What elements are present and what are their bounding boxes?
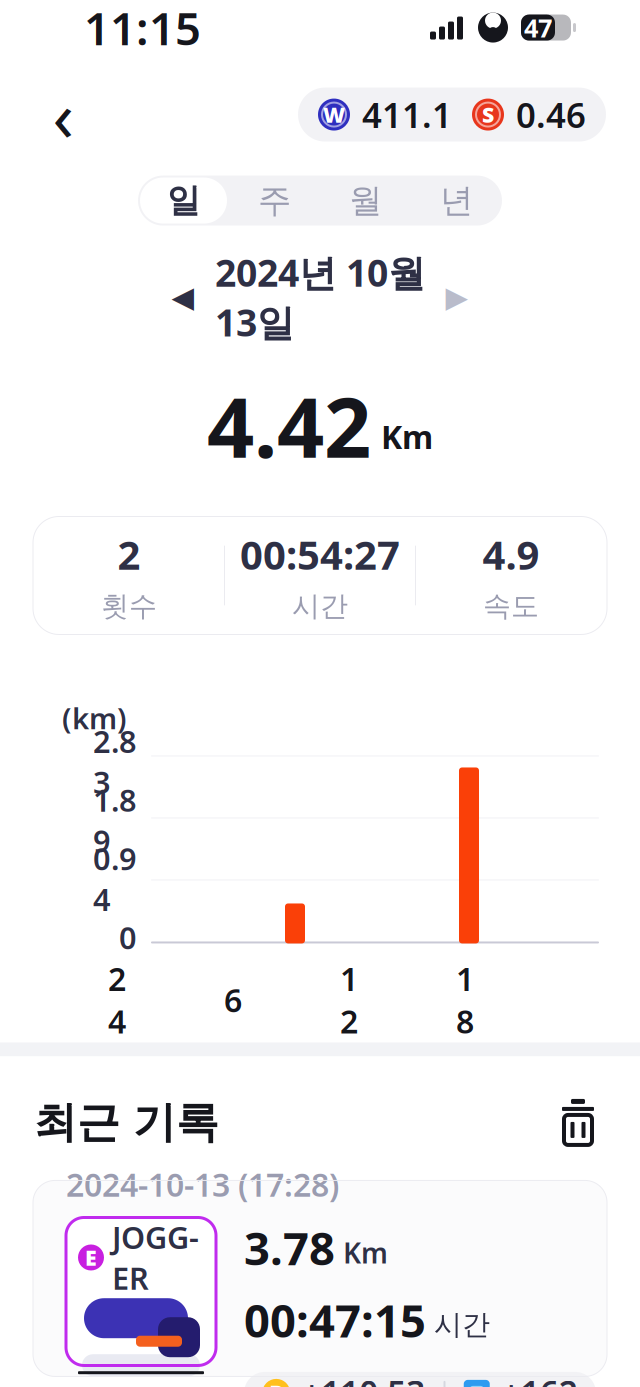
staticText: S [482, 100, 494, 129]
staticText: 11:15 [84, 0, 201, 58]
staticText: Km [343, 1234, 388, 1271]
staticText: E [85, 1243, 97, 1272]
staticText: 최근 기록 [34, 1096, 219, 1149]
staticText: 주 [258, 180, 291, 221]
button[interactable]: Back [32, 84, 94, 146]
staticText: 2024-10-13 (17:28) [66, 1163, 339, 1205]
staticText: 시간 [292, 589, 348, 623]
staticText: 년 [440, 180, 473, 221]
button[interactable]: Previous day [161, 275, 205, 319]
button[interactable]: 2024-10-13 (17:28) [33, 1180, 607, 1376]
staticText: 18 [456, 957, 474, 1042]
staticText: 속도 [483, 589, 539, 623]
staticText: (km) [62, 698, 127, 737]
staticText: 2 [117, 528, 140, 581]
staticText: 0.94 [93, 838, 137, 919]
staticText: JOGGER [112, 1217, 199, 1298]
staticText: 4.9 [482, 528, 539, 581]
staticText: P [269, 1378, 283, 1387]
staticText: 일 [167, 180, 200, 221]
staticText: W [323, 100, 345, 129]
staticText: 2024년 10월 13일 [215, 248, 425, 347]
staticText: 횟수 [101, 589, 157, 623]
staticText: 2.83 [93, 721, 137, 802]
button[interactable]: 월 [320, 176, 411, 226]
staticText: +162 [502, 1371, 578, 1387]
staticText: 47 [524, 11, 552, 44]
button[interactable]: Delete records [550, 1094, 606, 1150]
staticText: 00:54:27 [240, 528, 400, 581]
button[interactable]: Next day [435, 275, 479, 319]
staticText: 0.46 [516, 91, 586, 137]
button[interactable]: 년 [411, 176, 502, 226]
button[interactable]: 일 [138, 176, 229, 226]
button[interactable]: W [298, 88, 606, 142]
staticText: 0 [119, 917, 137, 958]
staticText: 월 [349, 180, 382, 221]
staticText: 3.78 [244, 1217, 335, 1278]
staticText: 24 [108, 957, 126, 1042]
staticText: +110.53 [302, 1371, 425, 1387]
button[interactable]: 주 [229, 176, 320, 226]
staticText: 411.1 [362, 91, 452, 137]
staticText: ‹ [52, 68, 73, 161]
staticText: 12 [340, 957, 358, 1042]
staticText: ◀ [171, 280, 194, 314]
staticText: 00:47:15 [244, 1290, 426, 1350]
staticText: 4.42 [207, 371, 371, 480]
staticText: Km [381, 415, 433, 458]
staticText: 시간 [434, 1308, 490, 1342]
staticText: 1.89 [93, 779, 137, 861]
staticText: ▶ [445, 280, 468, 314]
staticText: 6 [224, 979, 242, 1021]
